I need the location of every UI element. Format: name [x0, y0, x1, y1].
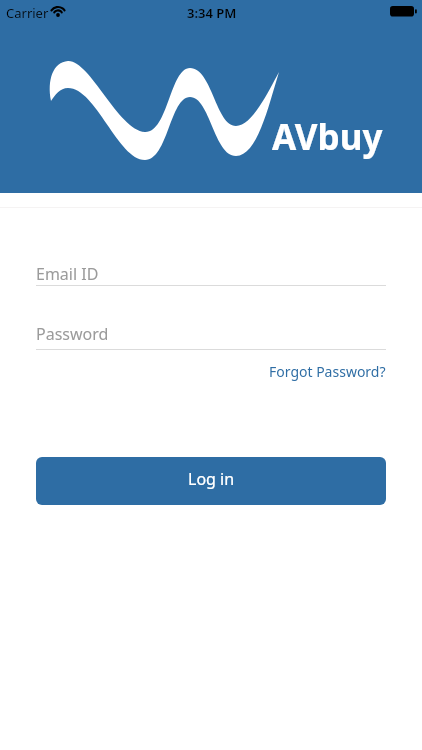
button[interactable]: Email ID [36, 253, 386, 286]
staticText: 3:34 PM [187, 4, 237, 22]
button[interactable]: Forgot Password? [256, 357, 396, 385]
staticText: Password [36, 323, 109, 345]
staticText: AVbuy [272, 113, 383, 161]
staticText: Forgot Password? [269, 362, 386, 381]
button[interactable]: Password [36, 313, 386, 350]
staticText: Carrier [6, 4, 49, 22]
staticText: Email ID [36, 263, 99, 285]
staticText: Log in [188, 468, 235, 490]
button[interactable]: Log in [36, 457, 386, 505]
